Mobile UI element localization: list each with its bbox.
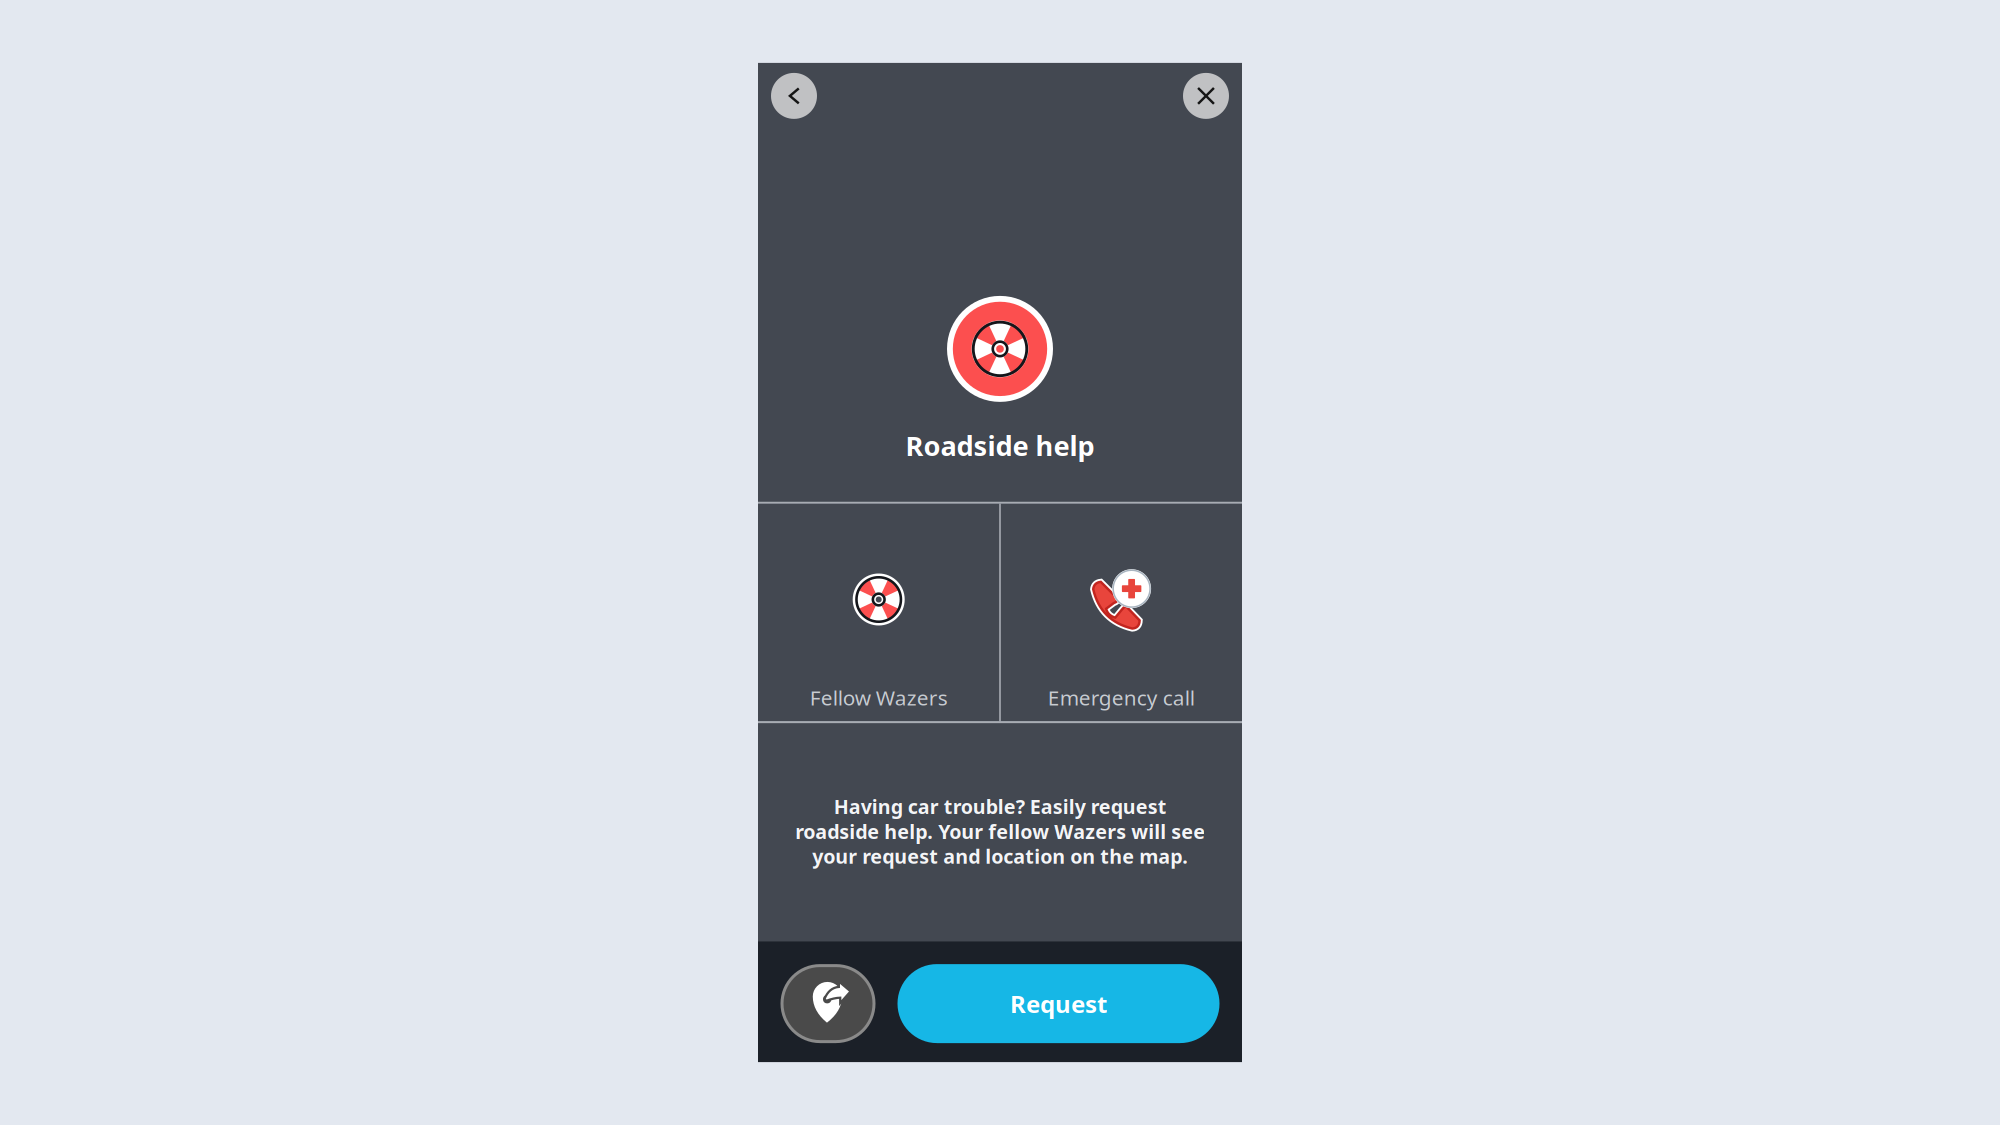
button[interactable]: Request — [897, 964, 1219, 1043]
button[interactable]: Back — [771, 73, 817, 119]
staticText: Request — [1010, 988, 1107, 1020]
button[interactable]: Emergency call — [1001, 503, 1242, 721]
button[interactable]: Close — [1183, 73, 1229, 119]
button[interactable]: Fellow Wazers — [758, 503, 999, 721]
button[interactable]: Share — [780, 964, 875, 1043]
staticText: Roadside help — [905, 427, 1094, 464]
staticText: Having car trouble? Easily request roads… — [795, 793, 1205, 869]
staticText: Emergency call — [1048, 683, 1195, 711]
staticText: Fellow Wazers — [810, 683, 948, 711]
